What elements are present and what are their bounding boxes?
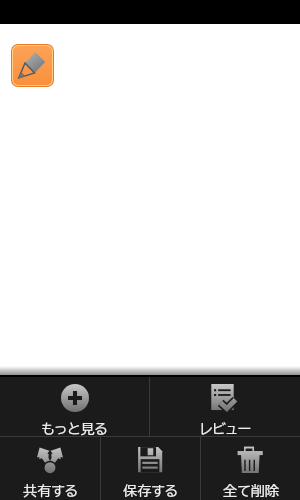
staticText: 全て削除	[223, 484, 279, 498]
other: Review	[211, 384, 239, 412]
other: Save	[137, 446, 165, 474]
other: Share	[36, 446, 64, 474]
other: More	[61, 384, 89, 412]
staticText: もっと見る	[41, 422, 108, 436]
button[interactable]: Save	[101, 437, 200, 500]
button[interactable]: Edit	[11, 44, 54, 87]
staticText: 共有する	[23, 484, 78, 498]
button[interactable]: More	[0, 377, 149, 436]
staticText: 保存する	[123, 484, 178, 498]
other: Delete all	[237, 446, 265, 474]
staticText: レビュー	[200, 422, 251, 436]
button[interactable]: Review	[150, 377, 300, 436]
button[interactable]: Share	[0, 437, 100, 500]
button[interactable]: Delete all	[201, 437, 300, 500]
